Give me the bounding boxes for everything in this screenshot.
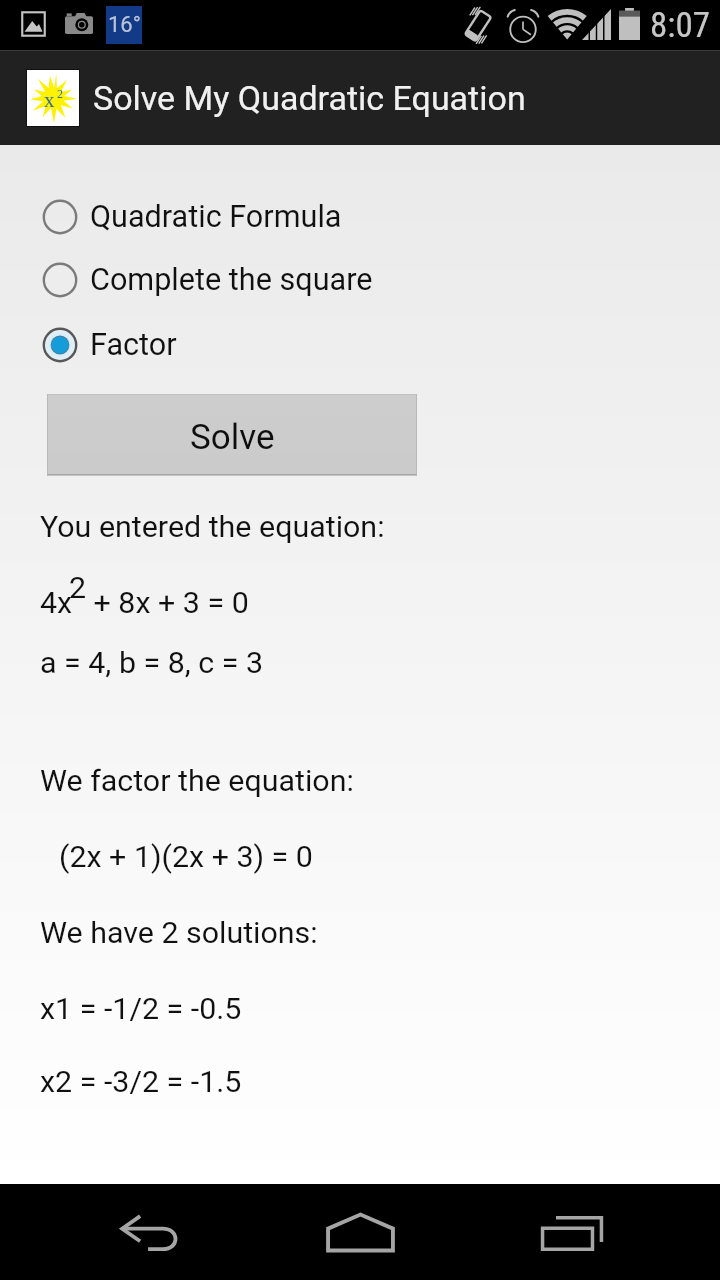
button[interactable]: Factor <box>0 313 720 377</box>
staticText: x2 = -3/2 = -1.5 <box>40 1064 242 1100</box>
button[interactable]: Home <box>270 1184 450 1280</box>
staticText: We factor the equation: <box>40 763 354 799</box>
staticText: + 8x + 3 = 0 <box>86 585 249 621</box>
staticText: Factor <box>90 327 177 363</box>
staticText: 16° <box>108 12 141 38</box>
staticText: 2 <box>69 570 87 606</box>
button[interactable]: Back <box>60 1184 240 1280</box>
staticText: 4x <box>40 585 73 621</box>
staticText: x1 = -1/2 = -0.5 <box>40 991 242 1027</box>
staticText: 8:07 <box>650 5 711 46</box>
staticText: Quadratic Formula <box>90 199 342 235</box>
staticText: Complete the square <box>90 262 373 298</box>
staticText: a = 4, b = 8, c = 3 <box>40 645 264 681</box>
staticText: (2x + 1)(2x + 3) = 0 <box>59 839 313 875</box>
staticText: Solve <box>190 417 275 458</box>
staticText: 2 <box>57 87 63 100</box>
staticText: x <box>44 88 55 111</box>
staticText: We have 2 solutions: <box>40 915 318 951</box>
button[interactable]: Recent apps <box>482 1184 662 1280</box>
button[interactable]: Solve <box>48 394 416 476</box>
staticText: Solve My Quadratic Equation <box>93 78 526 118</box>
button[interactable]: Complete the square <box>0 248 720 312</box>
staticText: You entered the equation: <box>40 509 385 545</box>
button[interactable]: Quadratic Formula <box>0 185 720 249</box>
